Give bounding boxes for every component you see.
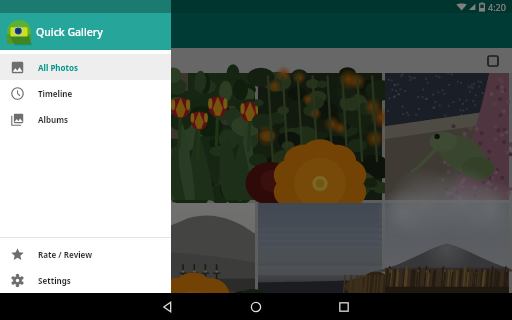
button[interactable]: Photo — [258, 73, 382, 200]
button[interactable]: Timeline — [0, 80, 171, 106]
button[interactable]: Photo — [4, 73, 128, 200]
button[interactable]: Photo — [385, 203, 509, 293]
button[interactable]: All Photos — [0, 54, 171, 80]
staticText: Albums — [38, 114, 68, 125]
button[interactable]: Albums — [0, 106, 171, 132]
staticText: 4:20 — [488, 1, 506, 13]
staticText: Timeline — [38, 88, 73, 99]
button[interactable]: Rate / Review — [0, 241, 171, 267]
staticText: Settings — [38, 275, 71, 286]
button[interactable]: Photo — [258, 296, 382, 320]
button[interactable]: Photo — [131, 73, 255, 200]
button[interactable]: Photo — [258, 203, 382, 293]
button[interactable]: Recent apps — [333, 296, 355, 318]
button[interactable]: Back — [157, 296, 179, 318]
staticText: Rate / Review — [38, 249, 93, 260]
staticText: All Photos — [38, 62, 79, 73]
button[interactable]: Home — [245, 296, 267, 318]
button[interactable]: Photo — [385, 73, 509, 200]
button[interactable]: Photo — [4, 203, 128, 293]
button[interactable]: Settings — [0, 267, 171, 293]
button[interactable]: Select all — [488, 56, 498, 66]
staticText: Quick Gallery — [36, 25, 103, 39]
button[interactable]: Photo — [131, 203, 255, 293]
button[interactable]: Photo — [131, 296, 255, 320]
